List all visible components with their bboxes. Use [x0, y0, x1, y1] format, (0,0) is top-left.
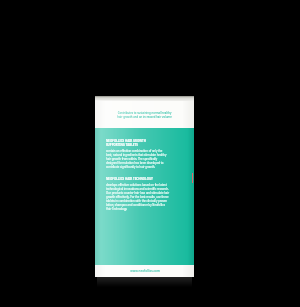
staticText: NEOFOLLICS HAIR GROWTH SUPPORTING TABLET…	[106, 139, 147, 147]
staticText: develops effective solutions based on th…	[106, 183, 170, 211]
button[interactable]: Neofollics hair growth supporting tablet…	[95, 96, 194, 277]
staticText: contain an effective combination of only…	[106, 149, 167, 169]
staticText: Contributes to sustaining normal healthy…	[117, 111, 172, 119]
button[interactable]: www.neofollics.com	[130, 269, 160, 273]
staticText: www.neofollics.com	[130, 269, 160, 273]
staticText: NEOFOLLICS HAIR TECHNOLOGY	[106, 177, 153, 181]
